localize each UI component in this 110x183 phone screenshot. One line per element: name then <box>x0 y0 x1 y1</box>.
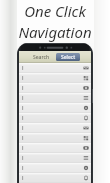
staticText: Select <box>61 54 76 61</box>
staticText: Search <box>33 54 50 61</box>
button[interactable]: Open application shortcut <box>19 153 91 163</box>
button[interactable]: Open application shortcut <box>19 73 91 83</box>
button[interactable]: Open application shortcut <box>19 163 91 173</box>
button[interactable]: Open application shortcut <box>19 143 91 153</box>
button[interactable]: Open application shortcut <box>19 63 91 73</box>
button[interactable]: Open application shortcut <box>19 113 91 123</box>
button[interactable]: Open application shortcut <box>19 123 91 133</box>
staticText: One Click <box>24 1 86 21</box>
button[interactable]: Open application shortcut <box>19 93 91 103</box>
button[interactable]: Open application shortcut <box>19 83 91 93</box>
button[interactable]: Open application shortcut <box>19 103 91 113</box>
button[interactable]: Search <box>31 53 52 62</box>
staticText: Navigation <box>18 22 92 42</box>
button[interactable]: Open application shortcut <box>19 133 91 143</box>
button[interactable]: Open application shortcut <box>19 173 91 183</box>
button[interactable]: Select <box>56 53 80 61</box>
